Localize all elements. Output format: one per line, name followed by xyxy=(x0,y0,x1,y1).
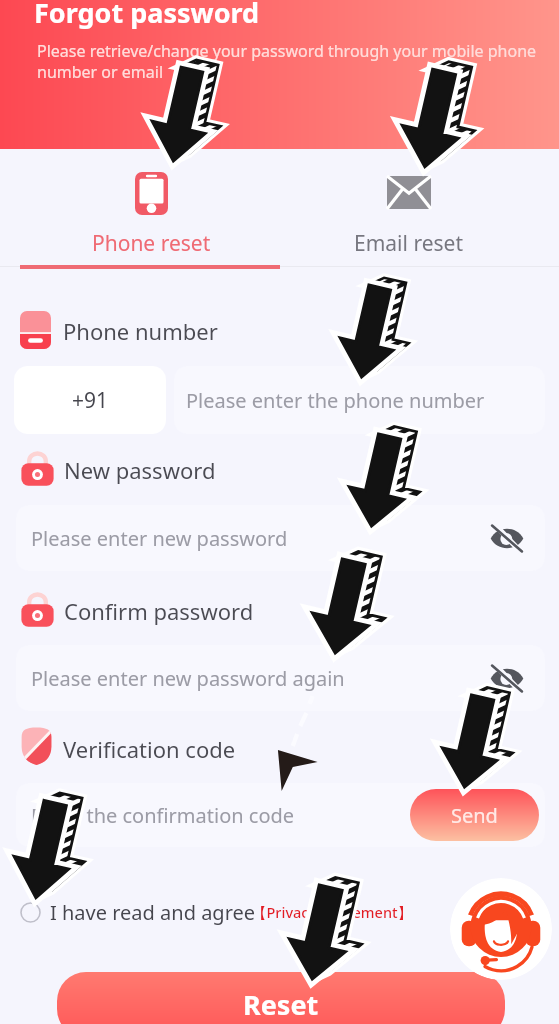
button[interactable]: Email reset xyxy=(282,149,535,266)
staticText: I have read and agree xyxy=(50,899,256,926)
button[interactable]: Reset xyxy=(57,972,505,1024)
button[interactable]: Please enter new password xyxy=(16,505,545,571)
staticText: Send xyxy=(451,802,498,829)
staticText: Forgot password xyxy=(34,0,260,31)
staticText: Please enter new password again xyxy=(31,665,345,692)
staticText: Phone number xyxy=(63,316,218,346)
button[interactable]: Toggle password visibility xyxy=(487,658,527,698)
button[interactable]: Customer support xyxy=(450,878,552,980)
button[interactable]: Please enter new password again xyxy=(16,645,545,711)
staticText: Please enter new password xyxy=(31,525,288,552)
staticText: Please retrieve/change your password thr… xyxy=(37,40,542,83)
button[interactable]: +91 xyxy=(14,366,166,434)
button[interactable]: Phone reset xyxy=(20,149,282,266)
staticText: Confirm password xyxy=(64,596,254,626)
staticText: Email reset xyxy=(354,229,463,258)
staticText: New password xyxy=(64,455,216,485)
button[interactable]: Toggle password visibility xyxy=(487,518,527,558)
button[interactable]: 【Privacy Agreement】 xyxy=(252,902,413,922)
button[interactable]: Send xyxy=(410,789,539,841)
staticText: +91 xyxy=(72,386,109,415)
button[interactable]: Please enter the phone number xyxy=(174,366,545,434)
button[interactable]: Enter the confirmation code xyxy=(16,783,545,847)
staticText: Please enter the phone number xyxy=(186,387,485,414)
staticText: Enter the confirmation code xyxy=(31,802,295,829)
staticText: Phone reset xyxy=(92,229,211,258)
button[interactable]: Agree to privacy agreement xyxy=(16,898,44,926)
staticText: Reset xyxy=(243,986,319,1023)
staticText: Verification code xyxy=(63,734,236,764)
